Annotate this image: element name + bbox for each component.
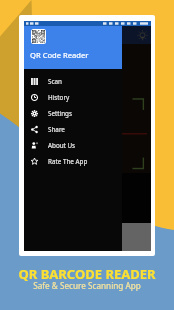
button[interactable]: History xyxy=(24,89,122,105)
staticText: Safe & Secure Scanning App xyxy=(0,280,174,291)
button[interactable]: Share xyxy=(24,121,122,137)
staticText: QR BARCODE READER xyxy=(0,265,174,283)
staticText: Scan xyxy=(48,77,62,86)
button[interactable]: Scan xyxy=(24,69,122,89)
button[interactable]: Settings xyxy=(24,105,122,121)
button[interactable]: Rate The App xyxy=(24,153,122,169)
staticText: Share xyxy=(48,125,65,134)
button[interactable]: Toggle flash xyxy=(137,30,148,41)
staticText: History xyxy=(48,93,70,102)
staticText: QR Code Reader xyxy=(30,50,89,60)
button[interactable]: About Us xyxy=(24,137,122,153)
staticText: About Us xyxy=(48,141,76,150)
staticText: Settings xyxy=(48,109,72,118)
staticText: Rate The App xyxy=(48,157,88,166)
